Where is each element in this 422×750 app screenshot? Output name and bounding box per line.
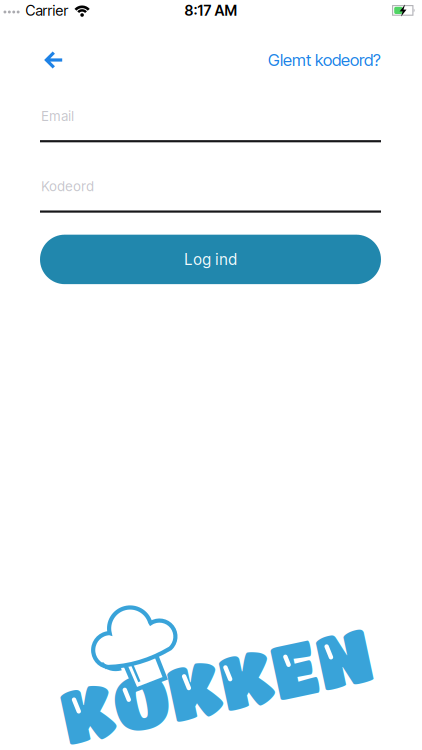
staticText: Email	[41, 108, 74, 124]
staticText: Log ind	[184, 250, 237, 269]
staticText: KOKKEN	[58, 641, 374, 727]
staticText: Kodeord	[41, 178, 94, 194]
button[interactable]: Email	[0, 108, 422, 142]
button[interactable]: Back	[41, 47, 67, 73]
staticText: Carrier	[26, 2, 69, 19]
button[interactable]: Log ind	[40, 235, 381, 284]
button[interactable]: Glemt kodeord?	[268, 50, 381, 70]
staticText: Glemt kodeord?	[268, 50, 381, 70]
button[interactable]: Kodeord	[0, 178, 422, 213]
staticText: 8:17 AM	[184, 2, 237, 19]
